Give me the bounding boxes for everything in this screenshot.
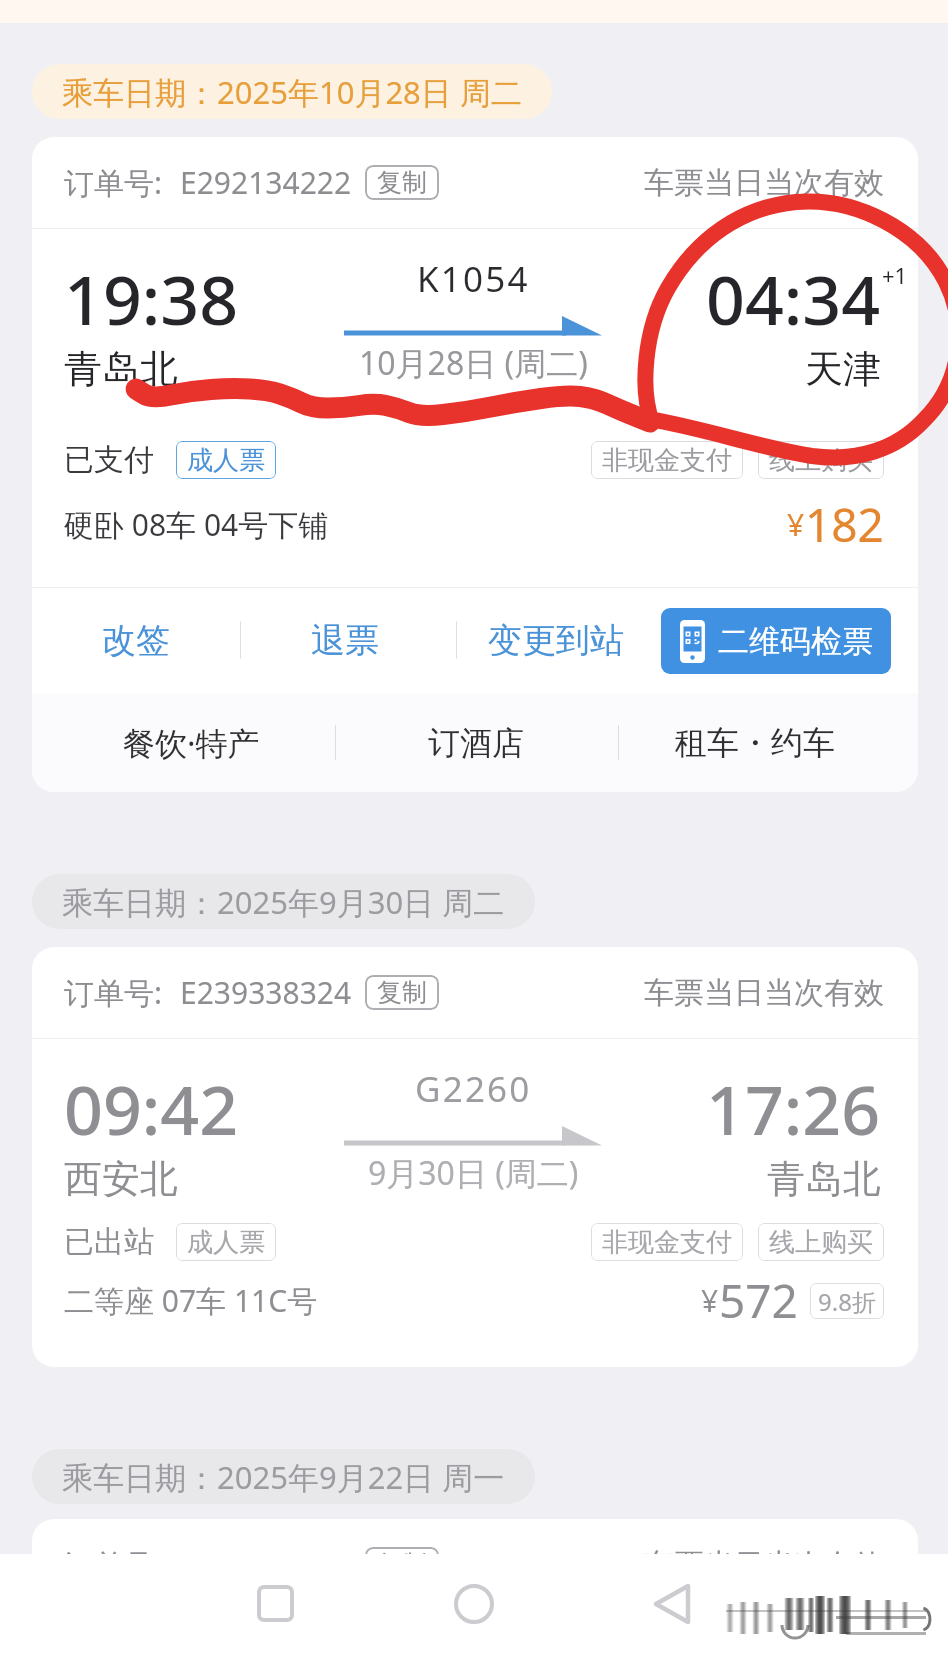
button[interactable]: 订单号: xyxy=(32,947,918,1367)
staticText: 成人票 xyxy=(187,444,265,477)
button[interactable]: 订单号: xyxy=(32,137,918,792)
staticText: 线上购买 xyxy=(769,1226,873,1259)
staticText: 车票当日当次有效 xyxy=(644,1546,884,1584)
button[interactable]: 订单号: xyxy=(32,1519,918,1653)
staticText: 二等座 07车 11C号 xyxy=(64,1280,318,1321)
button[interactable]: 乘车日期：2025年9月30日 周二 xyxy=(32,874,535,929)
staticText: 车票当日当次有效 xyxy=(644,974,884,1012)
staticText: E292134222 xyxy=(180,162,352,203)
button[interactable]: Back xyxy=(623,1554,720,1653)
staticText: E239338324 xyxy=(180,972,352,1013)
staticText: 硬卧 08车 04号下铺 xyxy=(64,504,329,545)
button[interactable]: 订酒店 xyxy=(341,693,611,792)
staticText: 天津 xyxy=(805,345,881,393)
staticText: 复制 xyxy=(377,1549,427,1580)
staticText: 乘车日期：2025年9月30日 周二 xyxy=(62,881,505,923)
staticText: 车票当日当次有效 xyxy=(644,164,884,202)
staticText: 退票 xyxy=(311,619,379,662)
staticText: 14:02 xyxy=(706,1634,881,1653)
button[interactable]: 租车・约车 xyxy=(620,693,890,792)
staticText: 变更到站 xyxy=(488,619,624,662)
staticText: 改签 xyxy=(102,619,170,662)
staticText: 已支付 xyxy=(64,441,154,479)
button[interactable]: 变更到站 xyxy=(456,588,656,693)
staticText: 乘车日期：2025年9月22日 周一 xyxy=(62,1456,505,1498)
button[interactable]: 餐饮·特产 xyxy=(56,693,326,792)
staticText: 10月28日 (周二) xyxy=(359,341,588,385)
staticText: 线上购买 xyxy=(769,444,873,477)
staticText: 9.8折 xyxy=(818,1285,876,1318)
staticText: 青岛北 xyxy=(64,345,178,393)
staticText: 09:42 xyxy=(64,1062,239,1155)
button[interactable]: Recent apps xyxy=(227,1554,324,1653)
staticText: 572 xyxy=(719,1269,798,1332)
button[interactable]: 复制 xyxy=(365,1547,439,1582)
staticText: 19:38 xyxy=(64,252,239,345)
staticText: 订单号: xyxy=(64,972,163,1013)
staticText: 182 xyxy=(805,493,884,556)
staticText: 餐饮·特产 xyxy=(123,721,260,765)
staticText: 租车・约车 xyxy=(675,723,835,763)
staticText: 乘车日期：2025年10月28日 周二 xyxy=(62,71,522,113)
staticText: 17:26 xyxy=(706,1062,881,1155)
staticText: 9月30日 (周二) xyxy=(368,1151,579,1195)
button[interactable]: 二维码检票 xyxy=(661,608,891,674)
staticText: 已出站 xyxy=(64,1223,154,1261)
staticText: ¥ xyxy=(701,1280,719,1321)
staticText: 订酒店 xyxy=(428,723,524,763)
staticText: +1 xyxy=(882,260,908,290)
staticText: ¥ xyxy=(787,504,805,545)
staticText: 西安北 xyxy=(64,1155,178,1203)
staticText: K1054 xyxy=(417,255,530,303)
staticText: 成人票 xyxy=(187,1226,265,1259)
button[interactable]: 乘车日期：2025年9月22日 周一 xyxy=(32,1449,535,1504)
button[interactable]: 退票 xyxy=(278,588,412,693)
button[interactable]: 乘车日期：2025年10月28日 周二 xyxy=(32,64,552,119)
staticText: 订单号: xyxy=(64,1544,163,1585)
button[interactable]: 复制 xyxy=(365,165,439,200)
staticText: 非现金支付 xyxy=(602,1226,732,1259)
staticText: 复制 xyxy=(377,977,427,1008)
staticText: 青岛北 xyxy=(767,1155,881,1203)
staticText: 复制 xyxy=(377,167,427,198)
button[interactable]: 改签 xyxy=(69,588,203,693)
button[interactable]: Home xyxy=(425,1554,522,1653)
staticText: 非现金支付 xyxy=(602,444,732,477)
staticText: G2260 xyxy=(415,1065,532,1113)
staticText: 订单号: xyxy=(64,162,163,203)
staticText: 二维码检票 xyxy=(718,622,873,661)
button[interactable]: 复制 xyxy=(365,975,439,1010)
staticText: 04:34 xyxy=(706,252,881,345)
